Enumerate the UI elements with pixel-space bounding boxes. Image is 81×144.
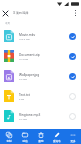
button[interactable]: Wallpaper.jpg — [0, 66, 81, 86]
button[interactable]: Selected — [67, 71, 77, 81]
button[interactable]: More options — [70, 8, 81, 18]
staticText: Movie.mkv — [19, 33, 36, 37]
staticText: 3 项已选择 — [13, 11, 29, 15]
button[interactable]: Document.zip — [0, 46, 81, 66]
button[interactable]: 移动 — [17, 129, 33, 144]
button[interactable]: Selected — [67, 31, 77, 41]
staticText: 复制 — [6, 139, 12, 142]
button[interactable]: Not selected — [67, 111, 77, 121]
staticText: Ringtone.mp3 — [19, 113, 41, 117]
button[interactable]: 复制 — [0, 129, 17, 144]
staticText: Text.txt — [19, 93, 30, 97]
staticText: 2 KB — [19, 97, 25, 100]
staticText: 更多 — [70, 139, 76, 142]
staticText: 今天 — [5, 21, 11, 24]
button[interactable]: Ringtone.mp3 — [0, 106, 81, 126]
staticText: Wallpaper.jpg — [19, 73, 40, 77]
staticText: 12.3 MB — [19, 57, 29, 60]
staticText: Document.zip — [19, 53, 40, 57]
button[interactable]: 更多 — [65, 129, 81, 144]
button[interactable]: Close — [0, 8, 11, 18]
button[interactable]: Movie.mkv — [0, 26, 81, 46]
staticText: 删除 — [38, 139, 44, 142]
staticText: 重命名 — [53, 139, 61, 142]
button[interactable]: 删除 — [33, 129, 49, 144]
staticText: 3.4 MB — [19, 77, 27, 80]
button[interactable]: Selected — [67, 51, 77, 61]
button[interactable]: Not selected — [67, 91, 77, 101]
button[interactable]: 重命名 — [49, 129, 65, 144]
staticText: 移动 — [22, 139, 28, 142]
button[interactable]: Text.txt — [0, 86, 81, 106]
staticText: 4.7 MB — [19, 117, 27, 120]
staticText: 123.5 MB — [19, 37, 30, 40]
